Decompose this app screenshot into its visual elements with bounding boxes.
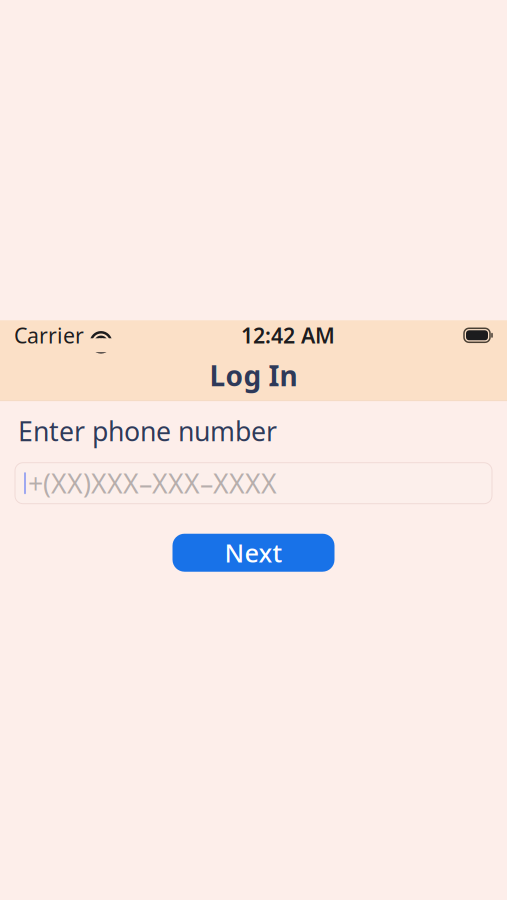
button[interactable]: Next [172,534,334,572]
staticText: 12:42 AM [241,321,335,349]
staticText: Carrier [14,321,84,349]
staticText: Log In [209,357,297,394]
staticText: +(XX)XXX–XXX–XXXX [28,465,277,501]
staticText: Next [224,536,282,569]
staticText: Enter phone number [18,413,277,449]
